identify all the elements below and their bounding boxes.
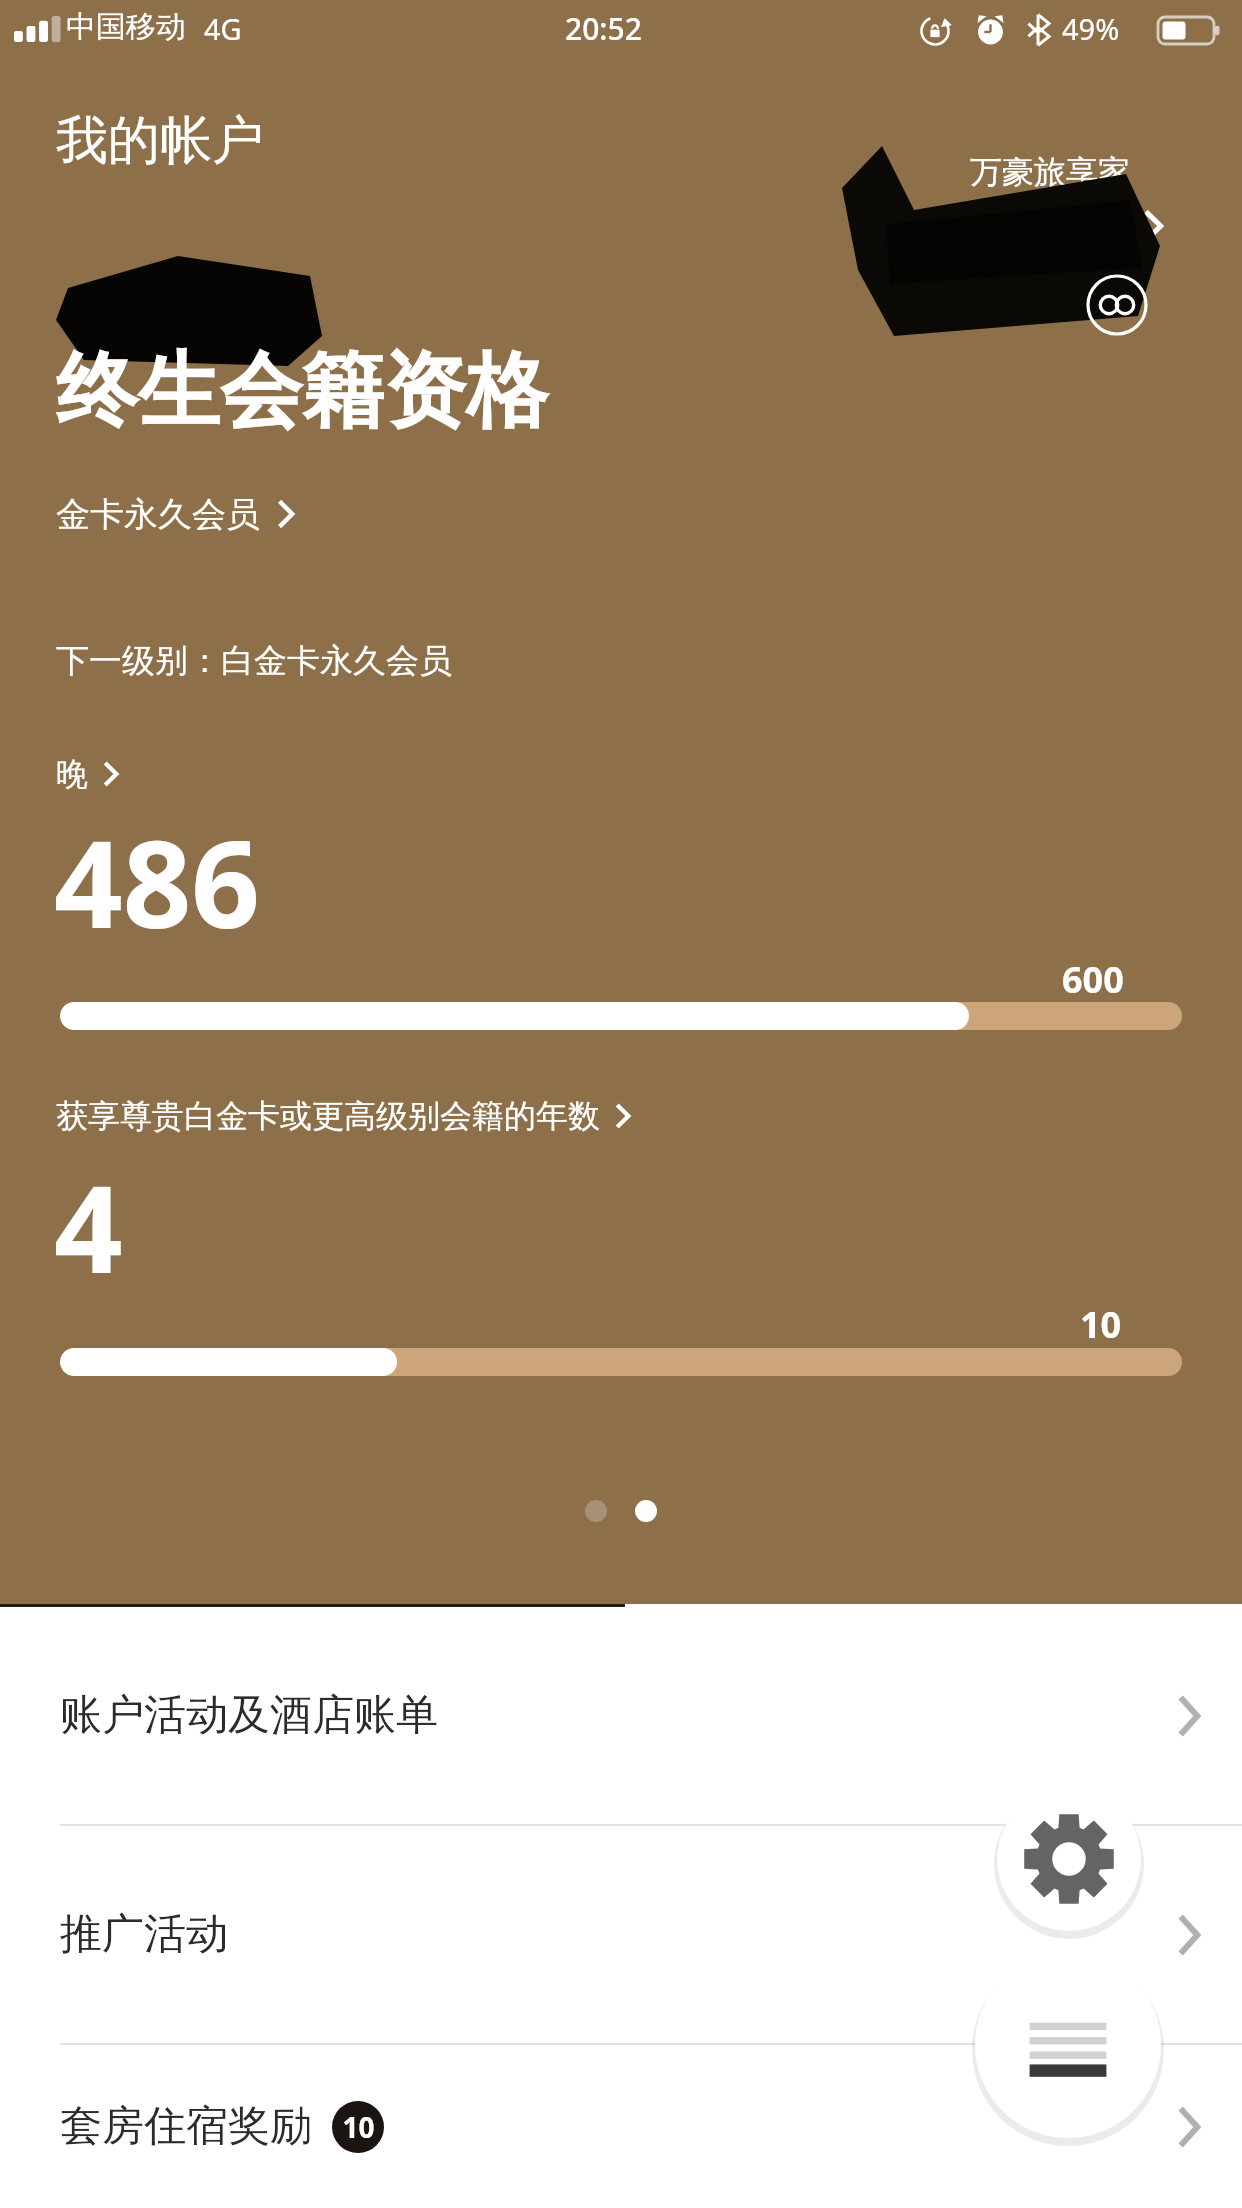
staticText: 终生会籍资格 [56, 340, 548, 443]
staticText: 金卡永久会员 [56, 493, 260, 536]
staticText: 我的帐户 [56, 108, 264, 174]
staticText: 下一级别：白金卡永久会员 [56, 640, 452, 682]
staticText: 账户活动及酒店账单 [60, 1689, 438, 1742]
staticText: 10 [1080, 1300, 1122, 1349]
staticText: 4 [54, 1145, 123, 1308]
button[interactable]: 晚 [56, 750, 118, 798]
staticText: 49% [1062, 9, 1120, 48]
staticText: 600 [1062, 955, 1124, 1004]
button[interactable]: Settings [994, 1784, 1144, 1934]
staticText: 10 [342, 2108, 375, 2146]
staticText: 486 [54, 800, 260, 963]
button[interactable]: Lifetime status [1086, 274, 1148, 336]
staticText: 万豪旅享家 [970, 152, 1130, 192]
button[interactable]: Menu [972, 1949, 1164, 2141]
button[interactable]: 金卡永久会员 [56, 486, 294, 542]
button[interactable]: 获享尊贵白金卡或更高级别会籍的年数 [56, 1092, 630, 1140]
staticText: 套房住宿奖励 [60, 2100, 312, 2153]
staticText: 获享尊贵白金卡或更高级别会籍的年数 [56, 1096, 600, 1136]
staticText: 361749422 [890, 202, 1086, 254]
button[interactable]: 账户活动及酒店账单 [0, 1607, 1242, 1824]
staticText: 晚 [56, 754, 88, 794]
button[interactable]: 万豪旅享家 [830, 140, 1242, 270]
staticText: 4G [204, 9, 242, 48]
staticText: 中国移动 [66, 8, 186, 46]
button[interactable]: 套房住宿奖励 [0, 2045, 1242, 2208]
button[interactable]: 推广活动 [0, 1826, 1242, 2043]
staticText: 推广活动 [60, 1908, 228, 1961]
staticText: 20:52 [565, 8, 642, 49]
